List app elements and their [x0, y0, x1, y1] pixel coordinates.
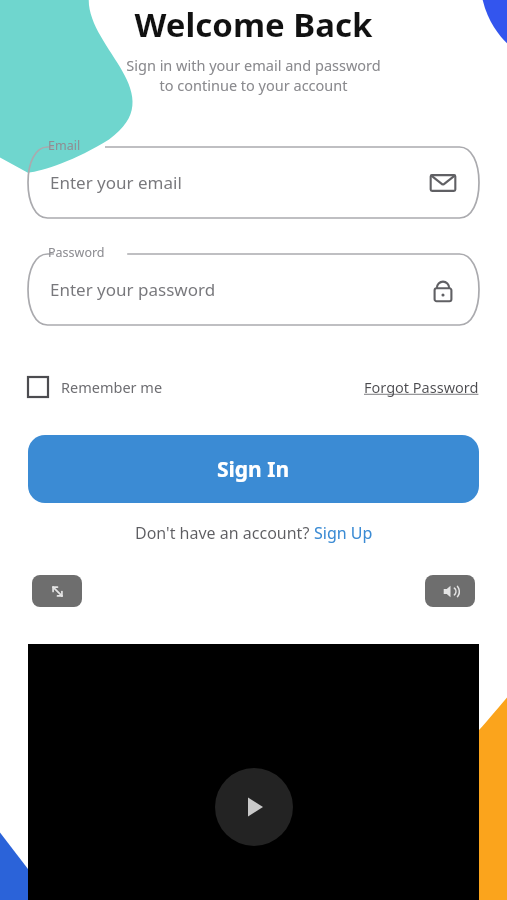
staticText: Enter your password	[50, 278, 216, 301]
button[interactable]: Expand	[32, 575, 82, 607]
staticText: Sign Up	[314, 522, 373, 544]
staticText: Enter your email	[50, 171, 182, 194]
staticText: Password	[48, 244, 105, 261]
button[interactable]: Forgot Password	[364, 377, 479, 397]
button[interactable]: Volume	[425, 575, 475, 607]
button[interactable]: Remember me	[28, 377, 163, 397]
button[interactable]: Email	[28, 137, 479, 218]
staticText: Don't have an account?	[135, 522, 314, 544]
staticText: Sign In	[217, 455, 290, 484]
staticText: Email	[48, 137, 81, 154]
button[interactable]: Sign Up	[314, 522, 373, 544]
button[interactable]: Sign In	[28, 435, 479, 503]
button[interactable]: Play	[215, 768, 293, 846]
staticText: Sign in with your email and password to …	[0, 55, 507, 96]
button[interactable]: Password	[28, 244, 479, 325]
staticText: Forgot Password	[364, 377, 479, 397]
button[interactable]: Play	[28, 644, 479, 900]
staticText: Remember me	[61, 377, 163, 397]
staticText: Welcome Back	[0, 2, 507, 47]
